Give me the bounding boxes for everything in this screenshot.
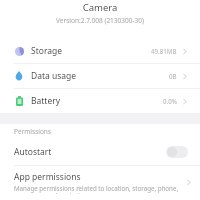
other: Open (182, 97, 188, 106)
button[interactable]: Storage (0, 39, 200, 63)
staticText: 0B (169, 72, 177, 80)
button[interactable]: App permissions (0, 166, 200, 200)
staticText: Battery (31, 95, 61, 107)
staticText: Storage (31, 45, 63, 57)
other: Open (182, 47, 188, 56)
staticText: Data usage (31, 70, 77, 82)
staticText: App permissions (14, 171, 81, 183)
staticText: 0.0% (163, 97, 177, 105)
other: Open (182, 72, 188, 81)
other: Open (186, 178, 192, 187)
staticText: Permissions (14, 127, 52, 136)
staticText: Version:2.7.008 (2130300-30) (0, 16, 200, 25)
button[interactable]: Autostart (0, 139, 200, 165)
staticText: Camera (0, 1, 200, 14)
button[interactable]: Data usage (0, 64, 200, 88)
staticText: Manage permissions related to location, … (14, 184, 182, 194)
staticText: Autostart (14, 146, 52, 158)
staticText: 49.81MB (151, 47, 177, 55)
button[interactable]: Autostart toggle (166, 146, 188, 158)
button[interactable]: Battery (0, 89, 200, 113)
